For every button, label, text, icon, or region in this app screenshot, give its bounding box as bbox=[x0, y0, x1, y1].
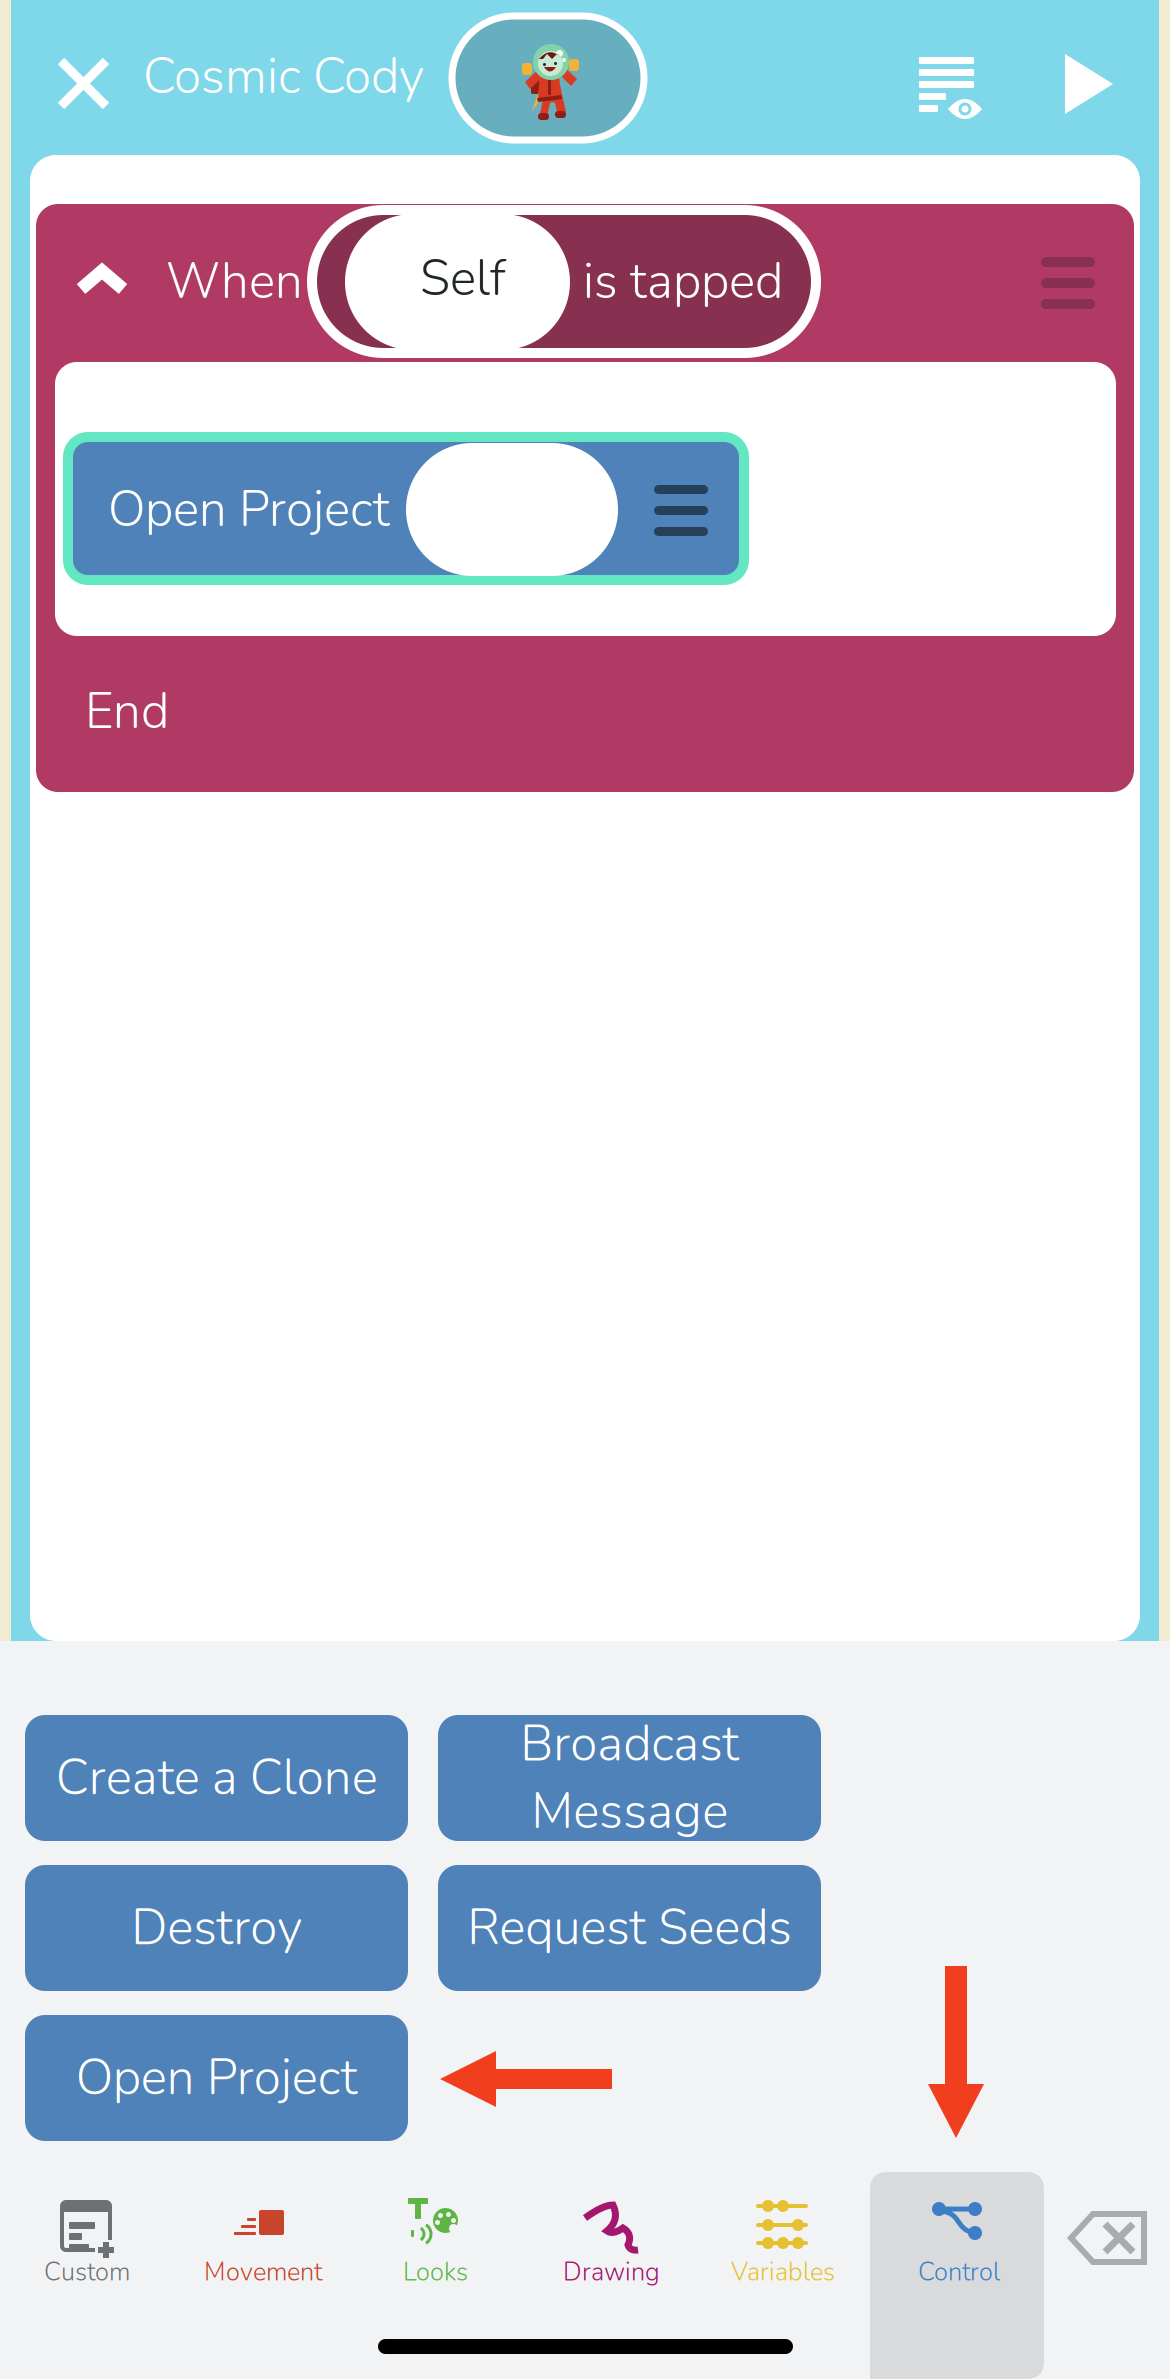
staticText: Movement bbox=[204, 2255, 322, 2290]
staticText: is tapped bbox=[583, 248, 783, 315]
button[interactable]: Self bbox=[312, 210, 816, 353]
button[interactable]: Variables bbox=[696, 2172, 870, 2379]
button[interactable]: Open Project bbox=[25, 2015, 408, 2141]
staticText: Drawing bbox=[563, 2255, 660, 2290]
staticText: Custom bbox=[44, 2255, 130, 2290]
staticText: Looks bbox=[403, 2255, 468, 2290]
button[interactable]: Broadcast Message bbox=[438, 1715, 821, 1841]
staticText: End bbox=[85, 678, 169, 745]
button[interactable]: Collapse block bbox=[74, 264, 130, 296]
button[interactable]: Drawing bbox=[522, 2172, 696, 2379]
button[interactable]: Show code preview bbox=[918, 53, 982, 117]
button[interactable]: Custom bbox=[0, 2172, 174, 2379]
button[interactable]: Create a Clone bbox=[25, 1715, 408, 1841]
staticText: Create a Clone bbox=[55, 1744, 377, 1812]
button[interactable]: Close project bbox=[56, 56, 111, 111]
button[interactable]: Looks bbox=[348, 2172, 522, 2379]
staticText: Open Project bbox=[108, 476, 390, 543]
button[interactable]: Cosmic Cody character bbox=[452, 16, 644, 140]
button[interactable]: Request Seeds bbox=[438, 1865, 821, 1991]
button[interactable]: Delete block bbox=[1044, 2172, 1170, 2379]
button[interactable]: Block options bbox=[1041, 257, 1095, 309]
button[interactable]: Play project bbox=[1065, 54, 1113, 114]
staticText: Open Project bbox=[75, 2044, 357, 2112]
staticText: Broadcast Message bbox=[520, 1711, 739, 1845]
staticText: Request Seeds bbox=[467, 1894, 792, 1962]
staticText: When bbox=[166, 248, 303, 315]
staticText: Destroy bbox=[131, 1894, 302, 1962]
button[interactable]: Open Project bbox=[68, 437, 744, 580]
button[interactable]: Control bbox=[870, 2172, 1044, 2379]
staticText: Variables bbox=[731, 2255, 835, 2290]
button[interactable]: Movement bbox=[174, 2172, 348, 2379]
button[interactable]: Destroy bbox=[25, 1865, 408, 1991]
staticText: Control bbox=[918, 2255, 1000, 2290]
staticText: Self bbox=[420, 245, 506, 312]
staticText: Cosmic Cody bbox=[143, 43, 424, 110]
